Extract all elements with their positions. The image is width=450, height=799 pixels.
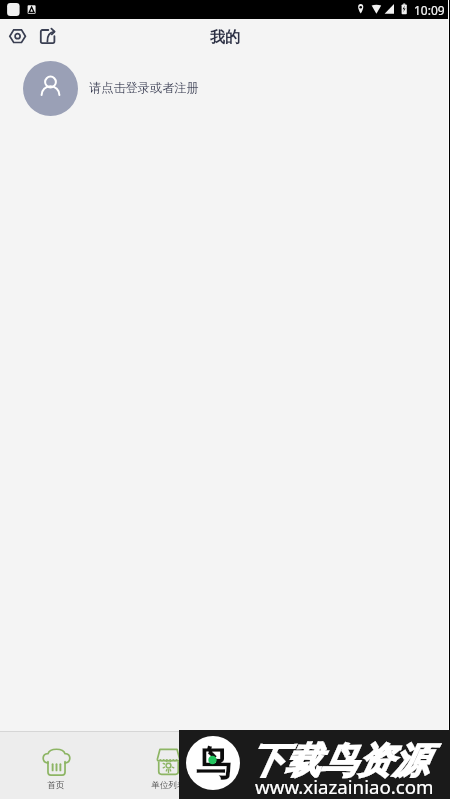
staticText: 首页 [47, 780, 65, 791]
staticText: 鸟 [196, 741, 231, 785]
staticText: 10:09 [414, 2, 445, 18]
staticText: 我的 [210, 28, 240, 47]
staticText: 我的 [385, 780, 403, 791]
staticText: 下载鸟资源 [248, 738, 428, 783]
staticText: www.xiazainiao.com [255, 774, 434, 799]
button[interactable]: 首页 [0, 732, 112, 799]
button[interactable]: 请点击登录或者注册 [0, 55, 450, 122]
staticText: 单位列表 [151, 780, 186, 791]
button[interactable]: 单位列表 [112, 732, 224, 799]
button[interactable]: 食材溯源 [224, 732, 337, 799]
button[interactable]: 我的 [337, 732, 450, 799]
button[interactable]: Share [33, 23, 62, 52]
staticText: 食材溯源 [263, 780, 298, 791]
staticText: 请点击登录或者注册 [89, 80, 199, 95]
button[interactable]: Settings [3, 23, 32, 52]
